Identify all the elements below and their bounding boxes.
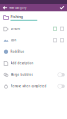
staticText: New category	[9, 6, 26, 9]
button[interactable]: Leisure	[0, 23, 67, 34]
button[interactable]: Back	[1, 4, 9, 11]
staticText: Rock Blue	[10, 50, 24, 53]
button[interactable]: Remove when completed	[0, 80, 67, 92]
staticText: Icon	[10, 38, 16, 42]
button[interactable]: Icon	[0, 34, 67, 46]
button[interactable]: Save	[58, 4, 66, 11]
staticText: Fishing	[10, 14, 22, 19]
staticText: Merge bubbles	[10, 73, 32, 76]
button[interactable]: Rock Blue	[0, 46, 67, 57]
staticText: Remove when completed	[10, 84, 46, 88]
staticText: Add description	[10, 61, 33, 65]
button[interactable]: Add description	[0, 57, 67, 69]
staticText: Leisure	[10, 27, 20, 30]
button[interactable]: Merge bubbles	[0, 69, 67, 80]
